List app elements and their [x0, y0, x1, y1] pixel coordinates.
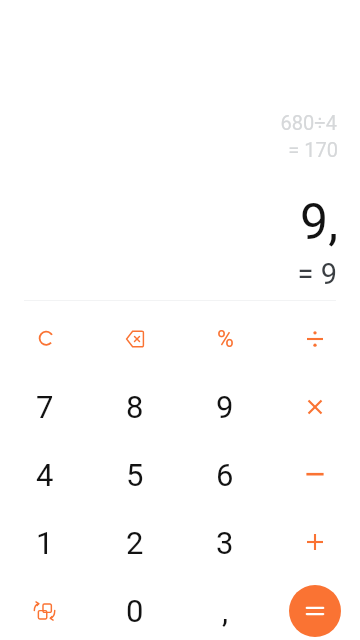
button[interactable]: 6 — [180, 441, 270, 509]
button[interactable]: 3 — [180, 509, 270, 577]
button[interactable]: 2 — [90, 509, 180, 577]
button[interactable]: 4 — [0, 441, 90, 509]
staticText: 9 — [216, 389, 234, 425]
staticText: 680÷4 — [280, 111, 337, 134]
staticText: = 170 — [288, 138, 338, 161]
button[interactable]: Minus — [270, 441, 360, 509]
staticText: 1 — [36, 525, 54, 561]
button[interactable]: Multiply — [270, 373, 360, 441]
staticText: 9, — [300, 193, 338, 252]
staticText: 0 — [126, 593, 144, 629]
button[interactable]: Backspace — [90, 305, 180, 373]
staticText: 5 — [126, 457, 144, 493]
staticText: % — [217, 326, 234, 353]
staticText: 8 — [126, 389, 144, 425]
button[interactable]: 5 — [90, 441, 180, 509]
button[interactable]: 0 — [90, 577, 180, 640]
staticText: 2 — [126, 525, 144, 561]
button[interactable]: 8 — [90, 373, 180, 441]
button[interactable]: Clear — [0, 305, 90, 373]
staticText: 4 — [36, 457, 54, 493]
button[interactable]: Divide — [270, 305, 360, 373]
button[interactable]: % — [180, 305, 270, 373]
staticText: 6 — [216, 457, 234, 493]
staticText: , — [222, 593, 229, 629]
button[interactable]: 9 — [180, 373, 270, 441]
button[interactable]: Plus — [270, 509, 360, 577]
staticText: 3 — [216, 525, 234, 561]
button[interactable]: , — [180, 577, 270, 640]
button[interactable]: 1 — [0, 509, 90, 577]
button[interactable]: 7 — [0, 373, 90, 441]
button[interactable]: Unit converter — [0, 577, 90, 640]
button[interactable]: Equals — [270, 577, 360, 640]
staticText: 7 — [36, 389, 54, 425]
staticText: = 9 — [297, 257, 337, 291]
